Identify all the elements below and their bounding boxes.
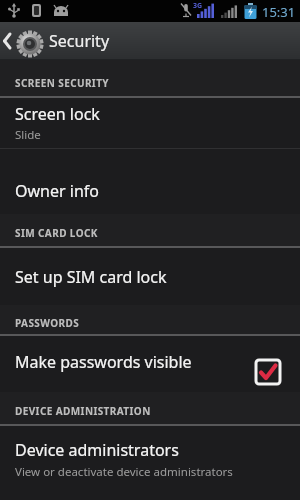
- staticText: Screen lock: [15, 103, 100, 125]
- staticText: 3G: [193, 1, 203, 11]
- button[interactable]: Make passwords visible: [0, 336, 300, 392]
- staticText: View or deactivate device administrators: [15, 464, 233, 480]
- button[interactable]: Screen lock: [0, 98, 300, 148]
- staticText: Owner info: [15, 180, 99, 202]
- staticText: 15:31: [262, 3, 296, 21]
- staticText: SIM CARD LOCK: [15, 226, 98, 240]
- staticText: Device administrators: [15, 439, 179, 461]
- button[interactable]: Device administrators: [0, 426, 300, 500]
- staticText: PASSWORDS: [15, 316, 80, 330]
- staticText: DEVICE ADMINISTRATION: [15, 404, 151, 418]
- staticText: Security: [49, 30, 110, 52]
- staticText: SCREEN SECURITY: [15, 76, 109, 90]
- button[interactable]: Security: [0, 22, 300, 60]
- staticText: Make passwords visible: [15, 351, 192, 373]
- staticText: Set up SIM card lock: [15, 266, 167, 288]
- button[interactable]: Owner info: [0, 149, 300, 214]
- staticText: Slide: [15, 127, 41, 143]
- button[interactable]: Set up SIM card lock: [0, 248, 300, 305]
